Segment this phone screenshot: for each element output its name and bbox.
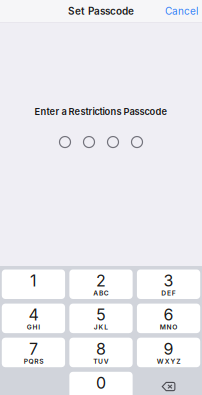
button[interactable]: 6 xyxy=(137,304,200,333)
staticText: DEF xyxy=(161,289,176,297)
staticText: 6 xyxy=(164,305,174,324)
staticText: 3 xyxy=(164,271,174,290)
staticText: 0 xyxy=(96,373,106,393)
button[interactable]: 7 xyxy=(2,338,65,367)
staticText: MNO xyxy=(160,323,177,331)
staticText: 4 xyxy=(28,305,38,324)
staticText: 7 xyxy=(29,339,38,359)
staticText: 8 xyxy=(96,339,106,359)
staticText: Enter a Restrictions Passcode xyxy=(34,106,167,117)
staticText: GHI xyxy=(27,323,40,331)
button[interactable]: 1 xyxy=(2,269,65,299)
button[interactable]: 8 xyxy=(69,338,133,367)
staticText: JKL xyxy=(94,323,108,331)
staticText: PQRS xyxy=(24,357,43,365)
staticText: ABC xyxy=(93,289,109,297)
button[interactable]: Cancel xyxy=(165,5,202,17)
staticText: 9 xyxy=(164,339,174,359)
staticText: WXYZ xyxy=(157,357,180,365)
button[interactable]: 3 xyxy=(137,269,200,299)
button[interactable]: 2 xyxy=(69,269,133,299)
staticText: 1 xyxy=(30,271,37,290)
button[interactable]: 4 xyxy=(2,304,65,333)
button[interactable]: 5 xyxy=(69,304,133,333)
button[interactable]: 9 xyxy=(137,338,200,367)
button[interactable]: 0 xyxy=(69,372,133,395)
staticText: 2 xyxy=(96,271,106,290)
staticText: Cancel xyxy=(165,5,198,17)
staticText: 5 xyxy=(96,305,106,324)
staticText: Set Passcode xyxy=(68,5,134,17)
button[interactable]: Delete xyxy=(137,372,200,395)
staticText: TUV xyxy=(93,357,109,365)
